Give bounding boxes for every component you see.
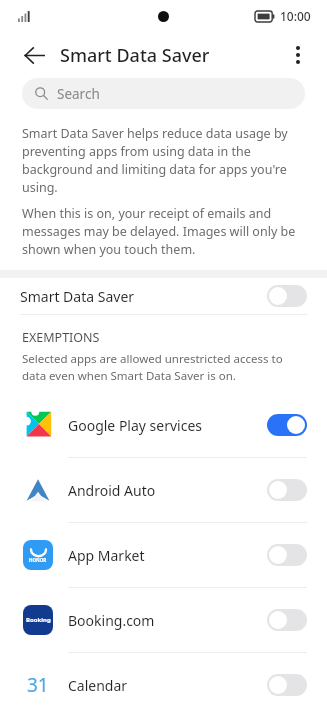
staticText: Smart Data Saver helps reduce data usage…: [22, 125, 305, 196]
staticText: Android Auto: [68, 481, 267, 500]
staticText: 31: [27, 672, 49, 698]
button[interactable]: More options: [276, 33, 320, 77]
staticText: App Market: [68, 546, 267, 565]
button[interactable]: Smart Data Saver: [0, 278, 327, 314]
staticText: Booking: [26, 616, 51, 624]
button[interactable]: Search: [22, 78, 305, 109]
button[interactable]: Off: [267, 609, 307, 631]
button[interactable]: HONOR: [0, 523, 327, 587]
button[interactable]: Android Auto: [0, 458, 327, 522]
button[interactable]: 31: [0, 653, 327, 717]
staticText: Smart Data Saver: [20, 287, 267, 306]
button[interactable]: Off: [267, 285, 307, 307]
staticText: 10:00: [280, 8, 311, 24]
button[interactable]: Google Play services: [0, 393, 327, 457]
button[interactable]: Back: [12, 33, 56, 77]
staticText: Booking.com: [68, 611, 267, 630]
staticText: Google Play services: [68, 416, 267, 435]
button[interactable]: Off: [267, 674, 307, 696]
staticText: When this is on, your receipt of emails …: [22, 205, 305, 258]
staticText: EXEMPTIONS: [22, 329, 100, 346]
staticText: Search: [57, 85, 100, 103]
button[interactable]: On: [267, 414, 307, 436]
button[interactable]: Booking: [0, 588, 327, 652]
staticText: Smart Data Saver: [60, 43, 210, 68]
staticText: HONOR: [29, 557, 47, 563]
button[interactable]: Off: [267, 479, 307, 501]
staticText: Selected apps are allowed unrestricted a…: [22, 351, 305, 383]
button[interactable]: Off: [267, 544, 307, 566]
staticText: Calendar: [68, 676, 267, 695]
